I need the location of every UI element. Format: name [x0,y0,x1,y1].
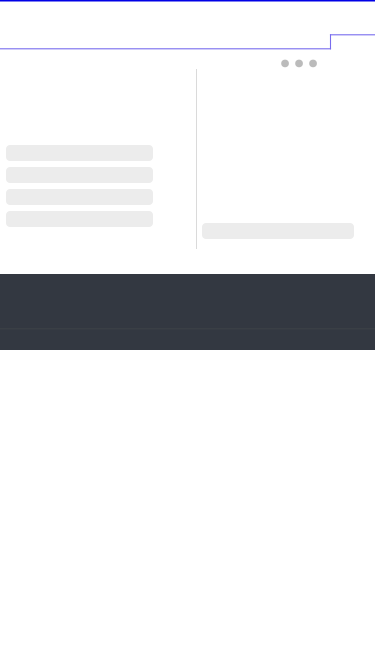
button[interactable]: More options [281,60,317,67]
button[interactable]: Tabs [0,34,331,49]
button[interactable]: Active tab [330,34,375,49]
